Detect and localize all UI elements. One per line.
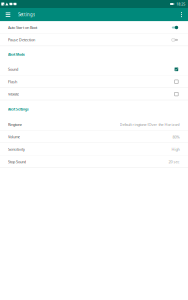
staticText: Alert Mode [8,52,25,57]
staticText: Stop Sound [8,159,26,164]
button[interactable]: Auto Start on Boot [0,21,188,34]
staticText: Ringtone [8,122,22,127]
staticText: Pause Detection [8,37,35,42]
staticText: Flash [8,79,17,84]
staticText: Vibrate [8,92,19,97]
button[interactable]: Vibrate [0,88,188,100]
staticText: Settings [18,12,35,18]
button[interactable]: Flash [0,75,188,88]
staticText: Volume [8,134,20,139]
button[interactable]: Ringtone [0,118,188,131]
button[interactable]: Menu [3,8,13,21]
staticText: 20 sec [168,159,179,164]
staticText: Sensitivity [8,147,25,152]
staticText: Alert Settings [8,107,29,111]
staticText: 18:25 [176,1,185,6]
button[interactable]: Sound [0,63,188,75]
button[interactable]: Stop Sound [0,155,188,168]
button[interactable]: Volume [0,131,188,143]
staticText: High [171,147,179,152]
staticText: Default ringtone (Over the Horizon) [119,122,179,127]
staticText: Sound [8,67,18,72]
staticText: 80% [172,134,179,140]
staticText: Auto Start on Boot [8,25,37,30]
button[interactable]: More options [177,8,186,21]
button[interactable]: Sensitivity [0,143,188,155]
button[interactable]: Pause Detection [0,34,188,46]
